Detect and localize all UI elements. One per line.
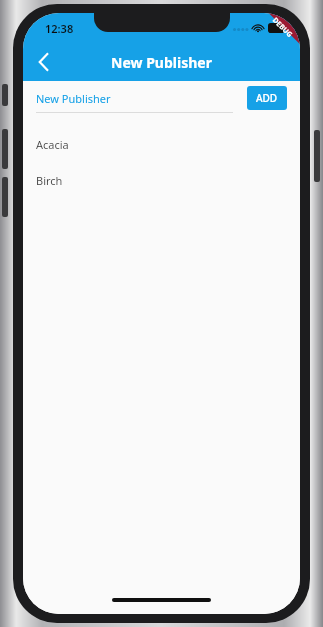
staticText: ADD [256,91,278,105]
staticText: DEBUG [270,16,295,40]
button[interactable]: ADD [247,86,287,110]
button[interactable]: Back [23,43,63,81]
staticText: New Publisher [23,53,300,72]
staticText: Acacia [36,137,69,152]
button[interactable]: Acacia [23,126,300,162]
staticText: New Publisher [36,91,111,106]
staticText: 12:38 [45,21,74,36]
button[interactable]: Birch [23,162,300,198]
button[interactable]: New Publisher [36,91,247,113]
staticText: Birch [36,173,63,188]
